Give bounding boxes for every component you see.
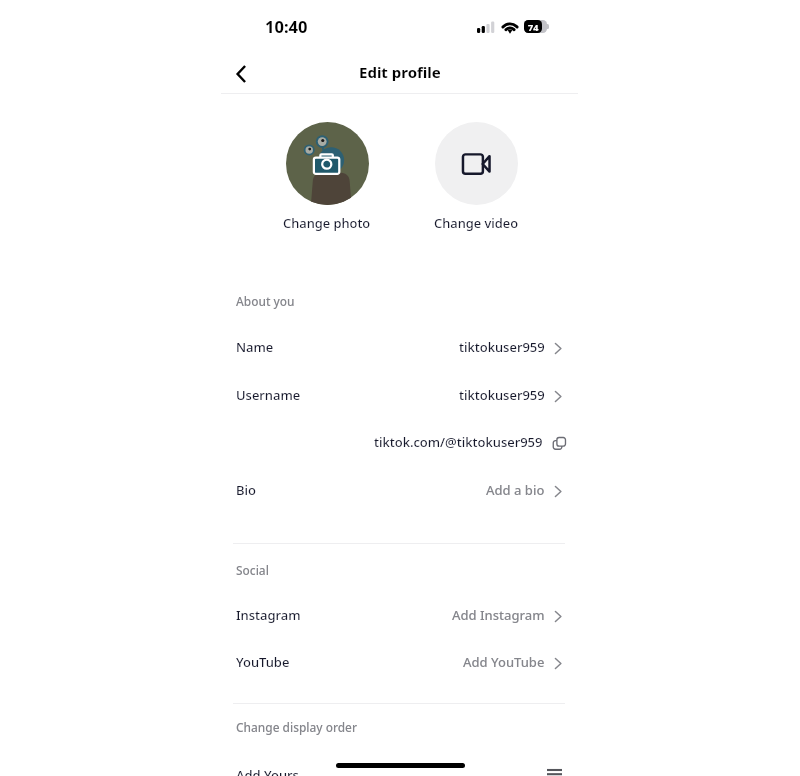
staticText: 74 — [528, 21, 539, 33]
button[interactable]: Change photo — [277, 122, 377, 232]
staticText: Edit profile — [359, 62, 441, 82]
button[interactable]: Name — [236, 323, 566, 370]
staticText: Social — [236, 562, 269, 578]
button[interactable]: Instagram — [236, 591, 566, 638]
staticText: tiktok.com/@tiktokuser959 — [374, 433, 543, 451]
staticText: Bio — [236, 481, 256, 499]
button[interactable]: YouTube — [236, 638, 566, 685]
staticText: Change photo — [283, 214, 371, 232]
staticText: Add YouTube — [463, 653, 545, 671]
staticText: Add a bio — [486, 481, 545, 499]
button[interactable]: Back — [223, 56, 259, 92]
button[interactable]: Copy profile link — [553, 437, 566, 450]
button[interactable]: tiktok.com/@tiktokuser959 — [236, 418, 566, 465]
staticText: Instagram — [236, 606, 301, 624]
button[interactable]: Username — [236, 371, 566, 418]
staticText: Name — [236, 338, 274, 356]
button[interactable]: Bio — [236, 466, 566, 513]
other: Reorder — [547, 769, 562, 776]
button[interactable]: Add Yours — [236, 751, 566, 776]
staticText: YouTube — [236, 653, 290, 671]
staticText: Username — [236, 386, 301, 404]
staticText: About you — [236, 293, 295, 309]
button[interactable]: Change video — [426, 122, 526, 232]
staticText: tiktokuser959 — [459, 338, 545, 356]
staticText: Change display order — [236, 719, 357, 735]
staticText: tiktokuser959 — [459, 386, 545, 404]
staticText: 10:40 — [265, 15, 308, 37]
staticText: Add Yours — [236, 766, 299, 776]
staticText: Change video — [434, 214, 519, 232]
staticText: Add Instagram — [452, 606, 545, 624]
